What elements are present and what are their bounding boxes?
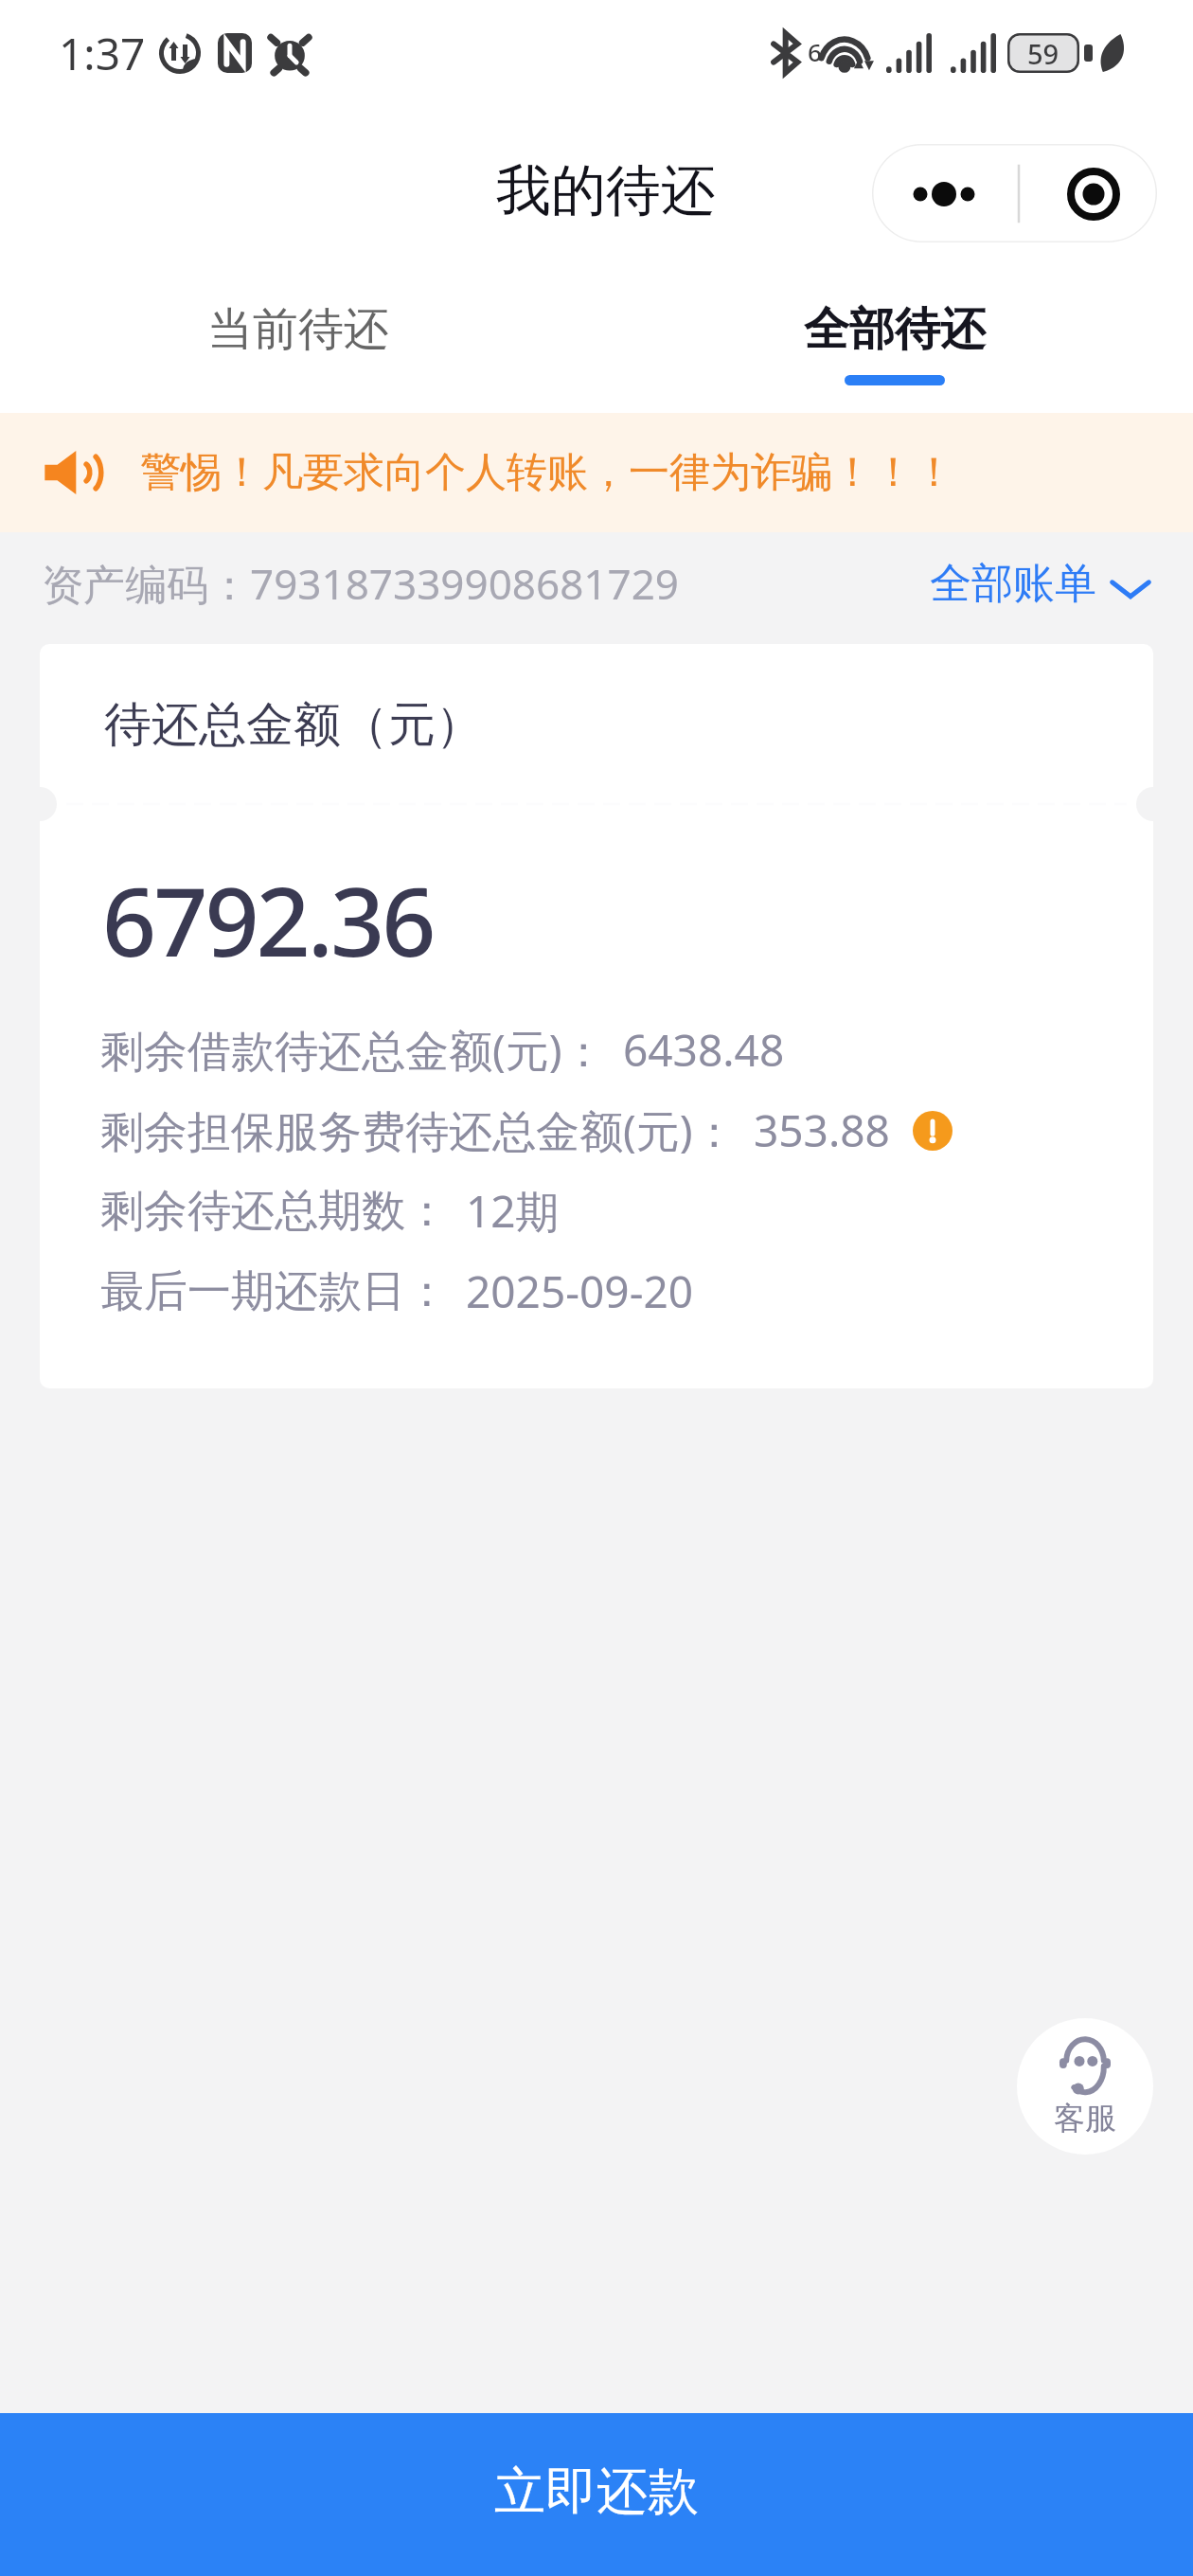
staticText: 资产编码：793187339908681729 [42, 555, 680, 612]
button[interactable]: More and close [872, 144, 1157, 242]
staticText: 当前待还 [207, 301, 389, 358]
staticText: 全部待还 [804, 301, 986, 358]
staticText: 剩余担保服务费待还总金额(元)： [100, 1100, 737, 1160]
staticText: 警惕！凡要求向个人转账，一律为诈骗！！！ [140, 447, 954, 498]
staticText: 最后一期还款日： [100, 1264, 449, 1319]
staticText: 待还总金额（元） [104, 695, 483, 755]
button[interactable]: 客服 Customer service [1017, 2018, 1153, 2155]
staticText: 6792.36 [102, 855, 434, 984]
staticText: 立即还款 [494, 2460, 699, 2524]
staticText: 12期 [466, 1181, 560, 1241]
staticText: 剩余借款待还总金额(元)： [100, 1020, 606, 1080]
staticText: 6438.48 [623, 1020, 785, 1080]
staticText: 6 [808, 35, 822, 68]
staticText: 59 [1027, 35, 1059, 72]
staticText: 2025-09-20 [466, 1261, 694, 1321]
button[interactable]: 立即还款 [0, 2413, 1193, 2576]
staticText: 353.88 [754, 1100, 890, 1160]
button[interactable]: 当前待还 [0, 282, 596, 413]
staticText: 客服 [1054, 2099, 1116, 2138]
button[interactable]: 全部账单 [930, 563, 1151, 615]
staticText: 1:37 [59, 24, 146, 83]
staticText: 全部账单 [930, 558, 1096, 610]
staticText: 剩余待还总期数： [100, 1184, 449, 1239]
button[interactable]: 全部待还 [596, 282, 1193, 413]
staticText: 我的待还 [496, 156, 716, 225]
